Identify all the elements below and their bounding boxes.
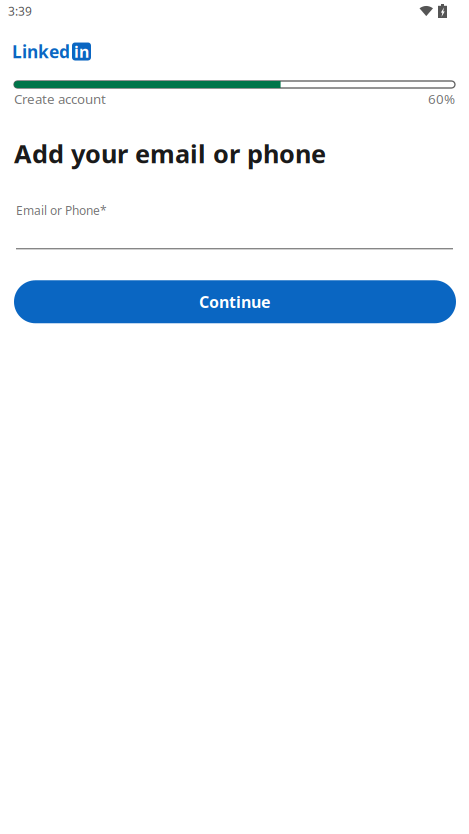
staticText: Linked [12,40,70,63]
staticText: 3:39 [8,3,32,19]
staticText: 60% [428,90,455,108]
button[interactable]: Email or Phone* [16,202,453,249]
button[interactable]: Continue [14,280,456,323]
staticText: in [74,41,89,62]
staticText: Create account [14,90,106,108]
staticText: Add your email or phone [14,137,326,170]
staticText: Email or Phone* [16,202,107,218]
staticText: Continue [199,291,271,312]
